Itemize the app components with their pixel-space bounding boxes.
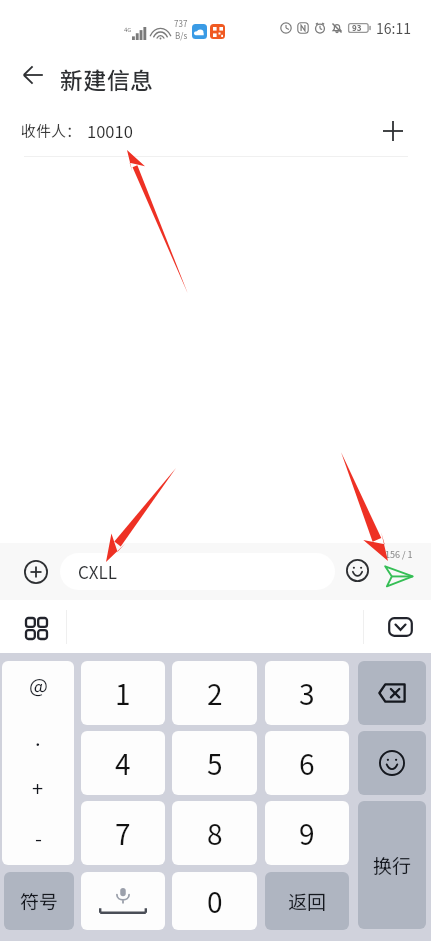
staticText: 737: [174, 18, 188, 30]
staticText: 6: [299, 743, 315, 784]
staticText: 1: [115, 673, 131, 714]
button[interactable]: 1: [81, 661, 165, 725]
button[interactable]: Emoji: [344, 557, 371, 584]
button[interactable]: 返回: [265, 872, 349, 930]
button[interactable]: Add attachment: [19, 555, 53, 589]
staticText: +: [32, 773, 44, 802]
staticText: 4: [115, 743, 131, 784]
staticText: 2: [207, 673, 223, 714]
staticText: 156 / 1: [385, 548, 413, 561]
staticText: -: [35, 823, 42, 852]
button[interactable]: 7: [81, 801, 165, 865]
button[interactable]: symbols: [2, 661, 74, 865]
staticText: 0: [207, 881, 223, 922]
button[interactable]: Keyboard options: [17, 609, 53, 645]
staticText: CXLL: [78, 559, 117, 584]
button[interactable]: 9: [265, 801, 349, 865]
staticText: 93: [352, 22, 362, 34]
staticText: 16:11: [376, 18, 411, 38]
staticText: 5: [207, 743, 223, 784]
button[interactable]: CXLL: [60, 553, 335, 590]
button[interactable]: Voice input / space: [81, 872, 165, 930]
staticText: B/s: [175, 30, 188, 42]
button[interactable]: 符号: [4, 872, 74, 930]
button[interactable]: 8: [172, 801, 257, 865]
staticText: 符号: [20, 887, 59, 915]
staticText: @: [29, 670, 48, 699]
button[interactable]: 5: [172, 731, 257, 795]
button[interactable]: 换行: [358, 801, 426, 929]
button[interactable]: Back: [15, 57, 51, 93]
button[interactable]: 6: [265, 731, 349, 795]
button[interactable]: 0: [172, 872, 257, 930]
button[interactable]: Emoji: [358, 731, 426, 795]
staticText: 3: [299, 673, 315, 714]
staticText: 7: [115, 813, 131, 854]
staticText: 4G: [124, 25, 132, 34]
staticText: 收件人：: [21, 120, 82, 142]
button[interactable]: Add recipient: [377, 115, 409, 147]
staticText: 10010: [87, 119, 133, 143]
button[interactable]: Send: [380, 561, 416, 591]
button[interactable]: 3: [265, 661, 349, 725]
staticText: 9: [299, 813, 315, 854]
staticText: 新建信息: [60, 62, 154, 95]
staticText: 返回: [288, 887, 327, 915]
button[interactable]: 4: [81, 731, 165, 795]
staticText: 8: [207, 813, 223, 854]
button[interactable]: Backspace: [358, 661, 426, 725]
button[interactable]: 2: [172, 661, 257, 725]
staticText: .: [35, 723, 41, 752]
button[interactable]: Hide keyboard: [382, 612, 418, 642]
staticText: 换行: [373, 851, 412, 879]
